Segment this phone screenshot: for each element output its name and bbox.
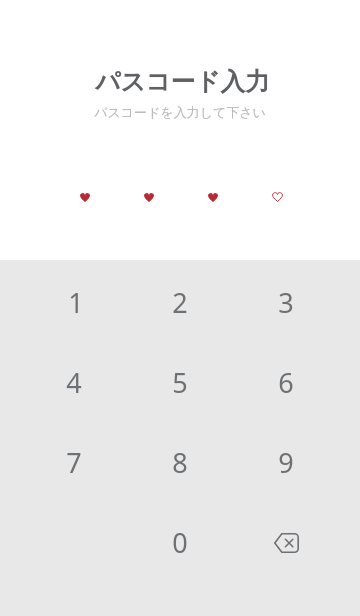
button[interactable]: 5 — [127, 342, 233, 422]
staticText: 4 — [66, 364, 82, 401]
staticText: 1 — [68, 284, 84, 321]
staticText: パスコードを入力して下さい — [94, 104, 266, 120]
button[interactable]: 4 — [21, 342, 127, 422]
button[interactable]: 1 — [21, 262, 127, 342]
staticText: 0 — [172, 524, 188, 561]
staticText: 2 — [172, 284, 188, 321]
staticText: 3 — [278, 284, 294, 321]
staticText: 5 — [172, 364, 188, 401]
button[interactable]: 7 — [21, 422, 127, 502]
staticText: パスコード入力 — [95, 66, 270, 97]
staticText: 7 — [66, 444, 82, 481]
button[interactable]: 0 — [127, 502, 233, 582]
button[interactable]: 9 — [233, 422, 339, 502]
staticText: 9 — [278, 444, 294, 481]
button[interactable]: 3 — [233, 262, 339, 342]
button[interactable]: 6 — [233, 342, 339, 422]
button[interactable]: 2 — [127, 262, 233, 342]
button[interactable]: 8 — [127, 422, 233, 502]
button[interactable]: Backspace — [233, 502, 339, 582]
staticText: 8 — [172, 444, 188, 481]
staticText: 6 — [278, 364, 294, 401]
